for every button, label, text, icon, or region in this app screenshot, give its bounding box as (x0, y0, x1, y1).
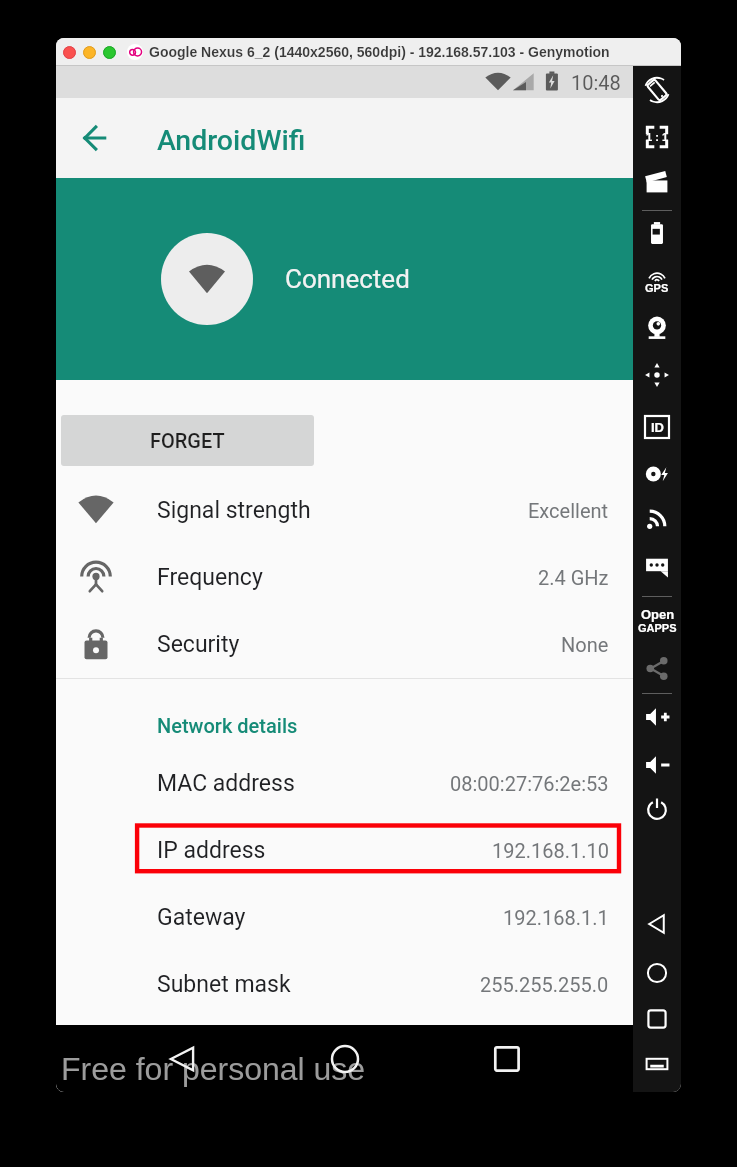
button[interactable]: MAC address (56, 750, 633, 817)
button[interactable]: FORGET (61, 415, 314, 466)
button[interactable]: Move device (633, 352, 681, 398)
button[interactable]: Frequency (56, 544, 633, 611)
button[interactable]: Subnet mask (56, 951, 633, 1018)
staticText: None (561, 633, 609, 656)
staticText: Network details (157, 714, 298, 737)
button[interactable]: Power (633, 786, 681, 832)
staticText: Security (157, 631, 240, 658)
button[interactable]: Recent apps (633, 996, 681, 1042)
staticText: 10:48 (571, 71, 621, 94)
button[interactable]: Open GApps (633, 597, 681, 643)
button[interactable]: Home (633, 950, 681, 996)
staticText: Free for personal use (61, 1051, 366, 1087)
staticText: ID (651, 420, 664, 435)
button[interactable]: Gateway (56, 884, 633, 951)
button[interactable]: Signal strength (56, 477, 633, 544)
staticText: Excellent (528, 499, 609, 522)
staticText: Open (641, 607, 675, 622)
button[interactable]: Battery (633, 210, 681, 256)
button[interactable]: Phone and SMS (633, 543, 681, 589)
staticText: 08:00:27:76:2e:53 (450, 772, 609, 795)
button[interactable]: GPS (633, 259, 681, 305)
button[interactable]: Recent apps (479, 1025, 535, 1092)
button[interactable]: Back (633, 901, 681, 947)
staticText: MAC address (157, 770, 295, 797)
button[interactable]: Volume up (633, 694, 681, 740)
staticText: Gateway (157, 904, 246, 931)
button[interactable]: Back (154, 1025, 210, 1092)
staticText: GAPPS (638, 622, 677, 634)
button[interactable]: Rotate screen (633, 67, 681, 113)
button[interactable]: Keyboard (633, 1041, 681, 1087)
staticText: 192.168.1.1 (503, 906, 609, 929)
button[interactable]: Disk I/O (633, 451, 681, 497)
staticText: Google Nexus 6_2 (1440x2560, 560dpi) - 1… (149, 44, 610, 60)
staticText: IP address (157, 837, 266, 864)
button[interactable]: Navigate up (68, 111, 122, 165)
button[interactable]: Share (633, 645, 681, 691)
button[interactable]: Record screen (633, 159, 681, 205)
staticText: AndroidWifi (157, 124, 306, 157)
staticText: 2.4 GHz (538, 566, 609, 589)
staticText: Subnet mask (157, 971, 291, 998)
staticText: 1 : 1 (646, 131, 669, 143)
button[interactable]: Network (633, 495, 681, 541)
staticText: Signal strength (157, 497, 311, 524)
staticText: Frequency (157, 564, 263, 591)
button[interactable]: IP address (56, 817, 633, 884)
button[interactable]: Home (317, 1025, 373, 1092)
button[interactable]: Volume down (633, 742, 681, 788)
staticText: Connected (285, 264, 410, 294)
button[interactable]: Security (56, 611, 633, 678)
staticText: 192.168.1.10 (492, 839, 609, 862)
staticText: GPS (645, 282, 669, 294)
button[interactable]: Identifiers (633, 404, 681, 450)
button[interactable]: Camera (633, 305, 681, 351)
button[interactable]: Scale 1 to 1 (633, 114, 681, 160)
staticText: FORGET (150, 429, 225, 452)
staticText: 255.255.255.0 (480, 973, 609, 996)
